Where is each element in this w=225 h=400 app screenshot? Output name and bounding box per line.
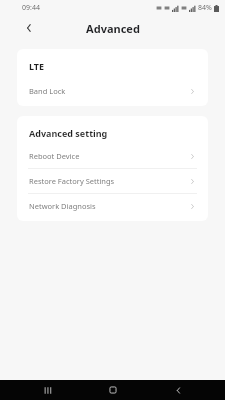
staticText: Advanced xyxy=(86,21,140,36)
staticText: LTE xyxy=(29,60,45,72)
button[interactable]: Recent apps xyxy=(30,380,66,400)
button[interactable]: Back xyxy=(160,380,196,400)
button[interactable]: Network Diagnosis xyxy=(17,194,208,218)
button[interactable]: Back xyxy=(18,17,40,39)
staticText: Restore Factory Settings xyxy=(29,176,115,186)
staticText: 84% xyxy=(198,3,212,13)
button[interactable]: Reboot Device xyxy=(17,144,208,168)
button[interactable]: Home xyxy=(95,380,131,400)
staticText: Band Lock xyxy=(29,86,66,96)
staticText: 09:44 xyxy=(22,3,40,13)
button[interactable]: Band Lock xyxy=(17,79,208,103)
staticText: Advanced setting xyxy=(29,127,108,139)
button[interactable]: Restore Factory Settings xyxy=(17,169,208,193)
staticText: Network Diagnosis xyxy=(29,201,96,211)
staticText: Reboot Device xyxy=(29,151,80,161)
